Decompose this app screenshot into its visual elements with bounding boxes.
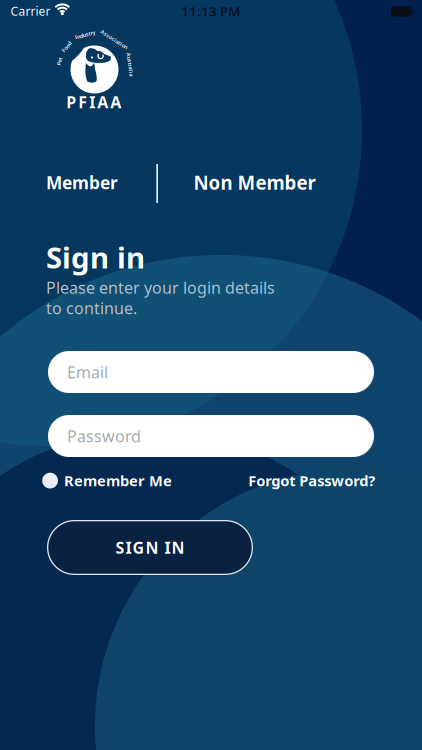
button[interactable]: Remember Me [42, 471, 172, 490]
staticText: Non Member [193, 170, 315, 195]
button[interactable]: Email [48, 351, 374, 393]
staticText: Forgot Password? [248, 471, 375, 490]
staticText: 11:13 PM [181, 2, 240, 20]
staticText: PFIAA [66, 91, 121, 113]
staticText: Remember Me [64, 471, 172, 490]
staticText: Member [46, 171, 118, 194]
button[interactable]: Member [46, 171, 118, 194]
staticText: Email [67, 361, 108, 383]
staticText: Carrier [10, 3, 50, 19]
staticText: Sign in [46, 237, 145, 276]
staticText: Australia [118, 61, 142, 68]
button[interactable]: Forgot Password? [248, 471, 375, 490]
staticText: Association [99, 36, 130, 43]
staticText: to continue. [46, 297, 137, 319]
button[interactable]: SIGN IN [47, 520, 253, 575]
staticText: Please enter your login details [46, 277, 275, 298]
staticText: Pet [55, 58, 63, 65]
button[interactable]: Non Member [193, 170, 315, 195]
staticText: Industry [75, 31, 96, 38]
staticText: SIGN IN [115, 537, 184, 558]
staticText: Password [67, 425, 141, 447]
staticText: Food [60, 43, 72, 50]
button[interactable]: Password [48, 415, 374, 457]
